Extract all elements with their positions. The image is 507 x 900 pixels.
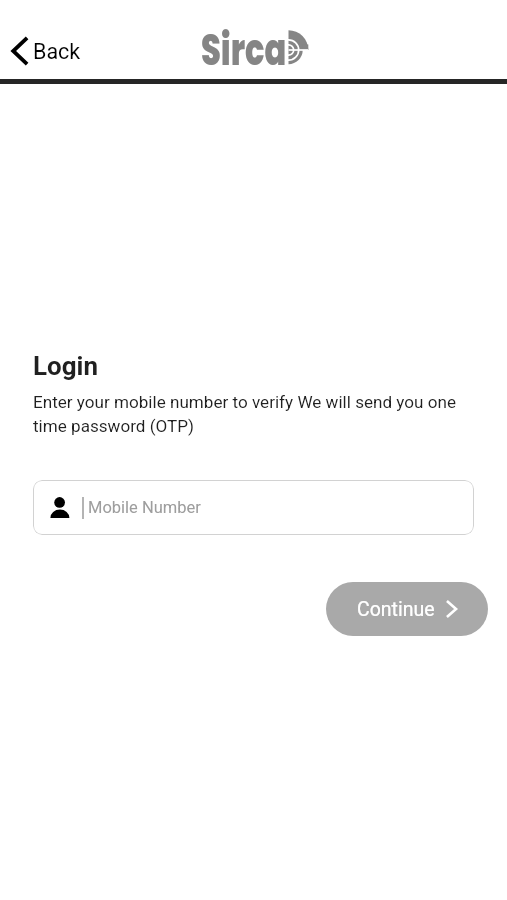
staticText: Login (33, 351, 99, 381)
staticText: Continue (357, 598, 435, 621)
other: Back (11, 36, 29, 66)
staticText: Back (33, 39, 81, 64)
button[interactable]: Back (5, 32, 84, 70)
staticText: Enter your mobile number to verify We wi… (33, 392, 474, 436)
button[interactable]: Mobile Number (33, 480, 474, 535)
button[interactable]: Continue (326, 582, 488, 636)
staticText: Sirca (201, 20, 287, 76)
staticText: Mobile Number (88, 498, 201, 517)
